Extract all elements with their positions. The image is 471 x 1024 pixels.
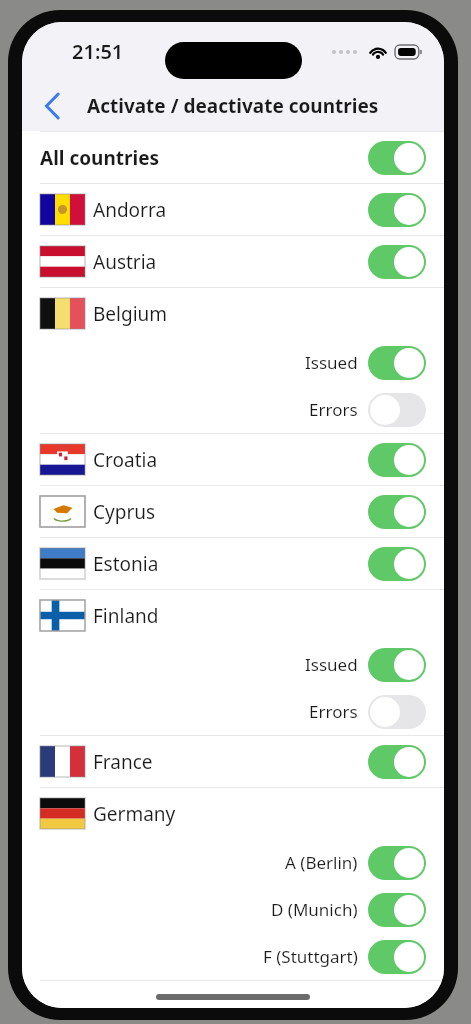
staticText: A (Berlin): [285, 851, 358, 874]
button[interactable]: Austria: [22, 236, 444, 287]
button[interactable]: On: [368, 893, 426, 927]
button[interactable]: On: [368, 940, 426, 974]
button[interactable]: Off: [368, 695, 426, 729]
button[interactable]: Off: [368, 393, 426, 427]
staticText: Issued: [305, 351, 358, 374]
button[interactable]: On: [368, 648, 426, 682]
staticText: Errors: [309, 700, 358, 723]
button[interactable]: On: [368, 846, 426, 880]
button[interactable]: All countries: [22, 132, 444, 183]
button[interactable]: Estonia: [22, 538, 444, 589]
button[interactable]: France: [22, 736, 444, 787]
staticText: Activate / deactivate countries: [87, 93, 379, 119]
staticText: Estonia: [93, 551, 159, 577]
staticText: Austria: [93, 249, 157, 275]
button[interactable]: Finland: [22, 590, 444, 641]
button[interactable]: A (Berlin): [22, 839, 444, 886]
button[interactable]: F (Stuttgart): [22, 933, 444, 980]
button[interactable]: On: [368, 346, 426, 380]
button[interactable]: Belgium: [22, 288, 444, 339]
staticText: Errors: [309, 398, 358, 421]
staticText: Andorra: [93, 197, 167, 223]
button[interactable]: D (Munich): [22, 886, 444, 933]
button[interactable]: On: [368, 745, 426, 779]
button[interactable]: Errors: [22, 386, 444, 433]
staticText: All countries: [40, 145, 160, 171]
button[interactable]: Germany: [22, 788, 444, 839]
button[interactable]: Andorra: [22, 184, 444, 235]
button[interactable]: On: [368, 141, 426, 175]
staticText: Croatia: [93, 447, 158, 473]
button[interactable]: Back: [30, 84, 74, 128]
button[interactable]: Issued: [22, 641, 444, 688]
staticText: Finland: [93, 603, 159, 629]
button[interactable]: Croatia: [22, 434, 444, 485]
staticText: Cyprus: [93, 499, 156, 525]
staticText: France: [93, 749, 153, 775]
button[interactable]: On: [368, 193, 426, 227]
staticText: D (Munich): [271, 898, 358, 921]
staticText: Germany: [93, 801, 176, 827]
button[interactable]: Issued: [22, 339, 444, 386]
button[interactable]: On: [368, 443, 426, 477]
button[interactable]: On: [368, 495, 426, 529]
button[interactable]: Cyprus: [22, 486, 444, 537]
staticText: Belgium: [93, 301, 168, 327]
staticText: 21:51: [72, 38, 124, 65]
staticText: F (Stuttgart): [263, 945, 358, 968]
button[interactable]: On: [368, 547, 426, 581]
button[interactable]: On: [368, 245, 426, 279]
staticText: Issued: [305, 653, 358, 676]
button[interactable]: Errors: [22, 688, 444, 735]
